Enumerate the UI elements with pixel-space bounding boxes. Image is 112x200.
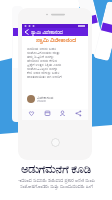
staticText: ಲೇಖಕರು	[37, 100, 47, 103]
staticText: ವಿವೇಕಾನಂದ	[37, 96, 54, 100]
button[interactable]: Nav item 2	[57, 109, 68, 120]
button[interactable]: Nav item 0	[26, 109, 37, 120]
staticText: ಇದರಿಂದ ಸುಮಾರು ಶುರುವಾದ ಪ್ರಕಾರ ಅನೇಕ ಮಂದಿ ಸ…	[18, 177, 95, 189]
other: Back	[22, 28, 31, 36]
button[interactable]: Back	[22, 28, 88, 36]
staticText: ಸ್ವಾಮಿ ವಿವೇಕಾನಂದ	[36, 37, 77, 45]
staticText: ಅಡುಗೆಮನೆಗೆ ಕೊಡಿ	[21, 161, 91, 176]
staticText: ಸ್ವಾಮಿ ವಿವೇಕಾನಂದ	[31, 29, 63, 36]
button[interactable]: Nav item 1	[42, 109, 53, 120]
staticText: ಅದರಿಂದ ಅವರು ಬಹಳ ಸಂತೋಷಗೊಂಡರು ಮತ್ತು ತಮ್ಮ ಶ…	[27, 46, 62, 80]
button[interactable]: Home	[51, 138, 60, 147]
button[interactable]: Nav item 3	[73, 109, 84, 120]
